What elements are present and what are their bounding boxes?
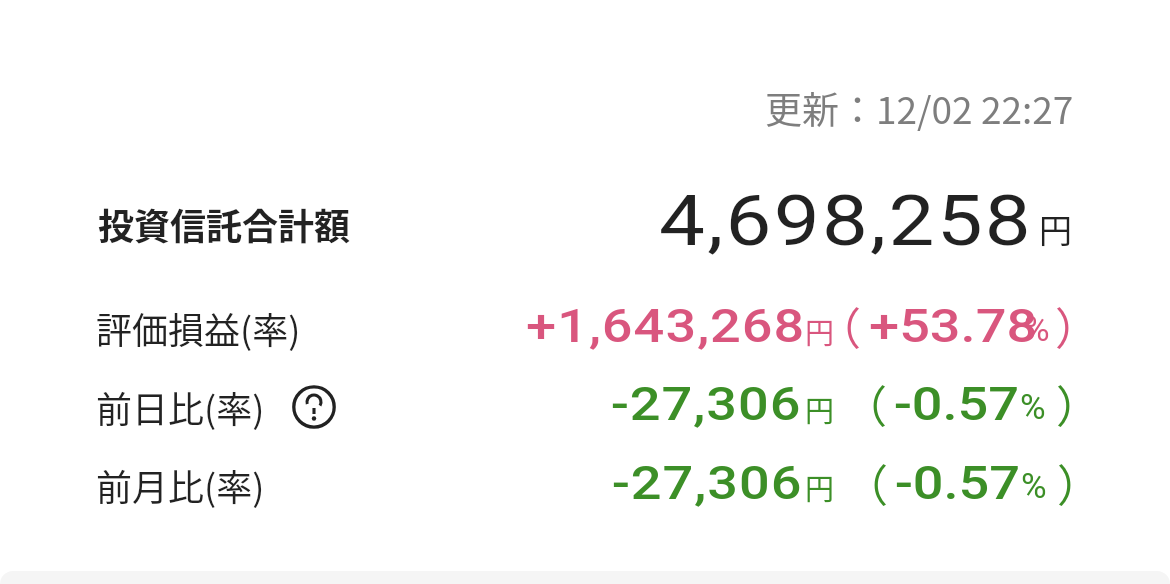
staticText: 円: [805, 388, 835, 430]
staticText: 円: [1039, 205, 1072, 253]
button[interactable]: ヘルプ: [288, 381, 340, 433]
staticText: -27,306: [611, 376, 802, 431]
staticText: （: [843, 372, 887, 436]
staticText: %: [1024, 309, 1050, 350]
staticText: 評価損益(率): [96, 302, 301, 354]
staticText: ）: [1055, 294, 1099, 358]
staticText: %: [1020, 387, 1046, 428]
staticText: +53.78: [869, 298, 1038, 353]
staticText: ）: [1057, 451, 1101, 515]
staticText: -0.57: [894, 376, 1019, 431]
staticText: 円: [805, 466, 835, 508]
staticText: +1,643,268: [526, 298, 805, 353]
staticText: 投資信託合計額: [98, 198, 351, 250]
staticText: -27,306: [612, 455, 803, 510]
staticText: （: [844, 451, 888, 515]
staticText: 前日比(率): [96, 381, 265, 433]
staticText: 更新：12/02 22:27: [765, 81, 1074, 135]
staticText: （: [817, 294, 861, 358]
staticText: 4,698,258: [659, 179, 1034, 262]
staticText: 円: [805, 310, 835, 352]
staticText: -0.57: [895, 455, 1020, 510]
staticText: 前月比(率): [96, 459, 265, 511]
staticText: ）: [1056, 372, 1100, 436]
staticText: %: [1021, 466, 1047, 507]
